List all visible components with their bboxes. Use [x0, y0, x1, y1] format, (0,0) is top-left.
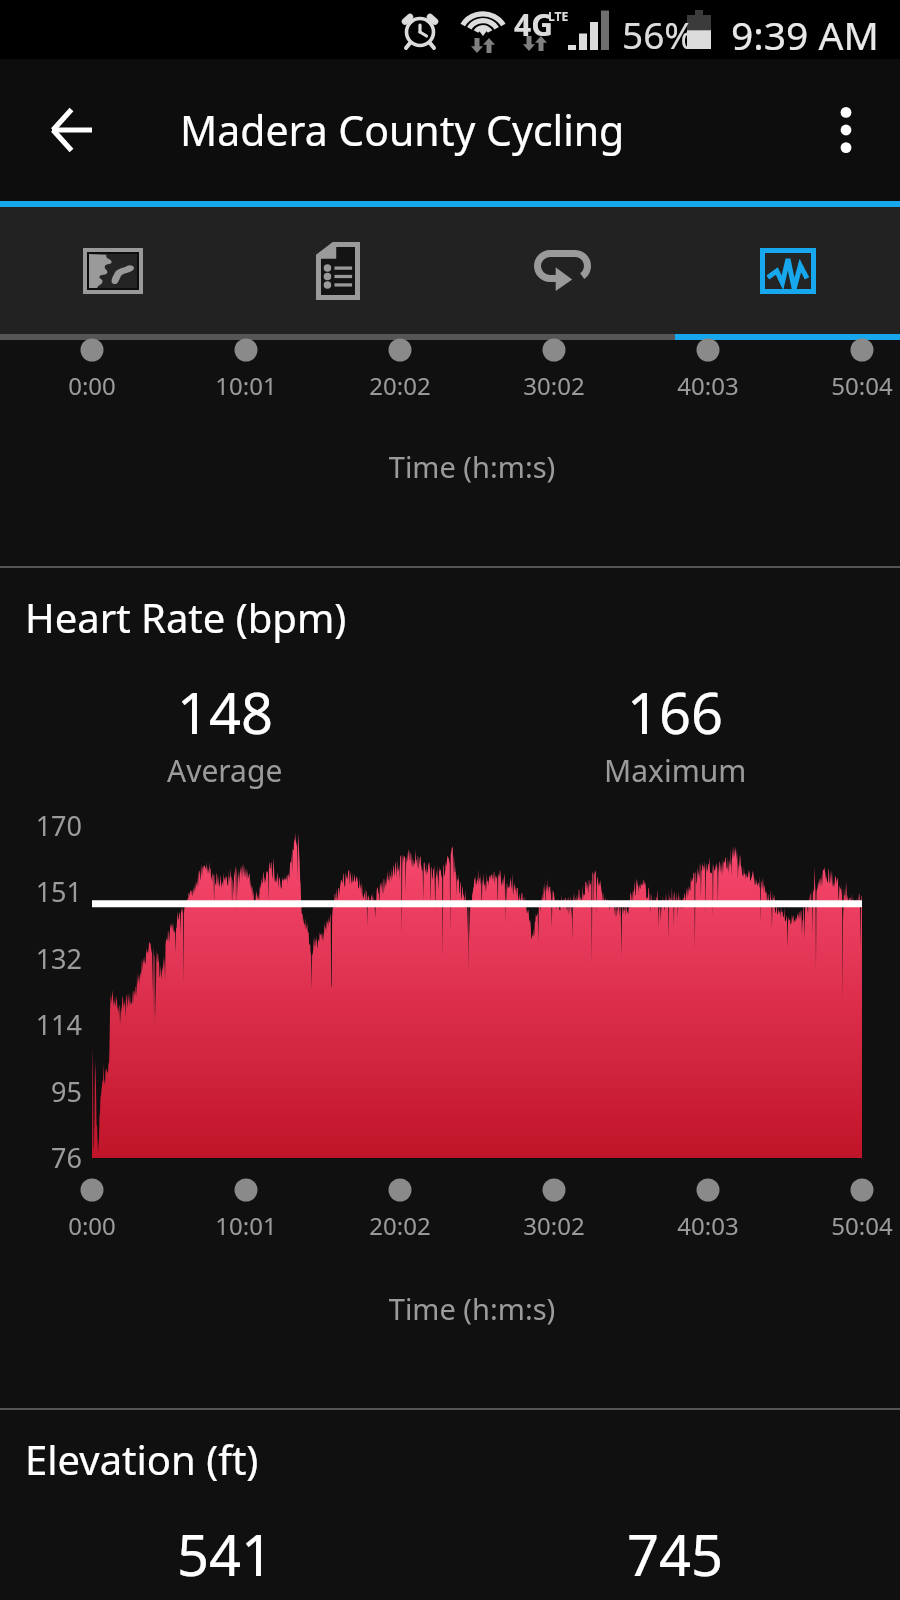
staticText: LTE [548, 8, 569, 24]
staticText: 56% [622, 9, 696, 59]
staticText: Heart Rate (bpm) [25, 590, 347, 644]
staticText: 20:02 [330, 369, 470, 402]
staticText: 114 [2, 1006, 82, 1043]
staticText: 4G [514, 4, 553, 45]
button[interactable]: Graphs [675, 207, 900, 334]
staticText: 0:00 [22, 1209, 162, 1242]
staticText: Time (h:m:s) [272, 447, 672, 486]
staticText: 745 [627, 1516, 724, 1592]
staticText: 40:03 [638, 1209, 778, 1242]
staticText: 50:04 [792, 1209, 900, 1242]
staticText: 10:01 [176, 1209, 316, 1242]
staticText: 30:02 [484, 1209, 624, 1242]
staticText: 151 [2, 873, 82, 910]
staticText: 76 [2, 1139, 82, 1176]
staticText: 9:39 AM [731, 8, 879, 61]
staticText: 20:02 [330, 1209, 470, 1242]
button[interactable]: More options [809, 93, 883, 167]
staticText: 0:00 [22, 369, 162, 402]
button[interactable]: Laps [450, 207, 675, 334]
staticText: 148 [177, 674, 274, 750]
button[interactable]: Back [34, 93, 108, 167]
button[interactable]: Summary [225, 207, 450, 334]
staticText: 95 [2, 1073, 82, 1110]
staticText: 132 [2, 940, 82, 977]
staticText: 40:03 [638, 369, 778, 402]
staticText: Elevation (ft) [25, 1432, 259, 1486]
staticText: 166 [627, 674, 724, 750]
staticText: 30:02 [484, 369, 624, 402]
staticText: 541 [177, 1516, 274, 1592]
staticText: Average [167, 750, 283, 791]
staticText: Maximum [604, 750, 747, 791]
staticText: 10:01 [176, 369, 316, 402]
staticText: 170 [2, 807, 82, 844]
staticText: Time (h:m:s) [272, 1289, 672, 1328]
staticText: 50:04 [792, 369, 900, 402]
button[interactable]: Map [0, 207, 225, 334]
staticText: Madera County Cycling [180, 102, 625, 158]
